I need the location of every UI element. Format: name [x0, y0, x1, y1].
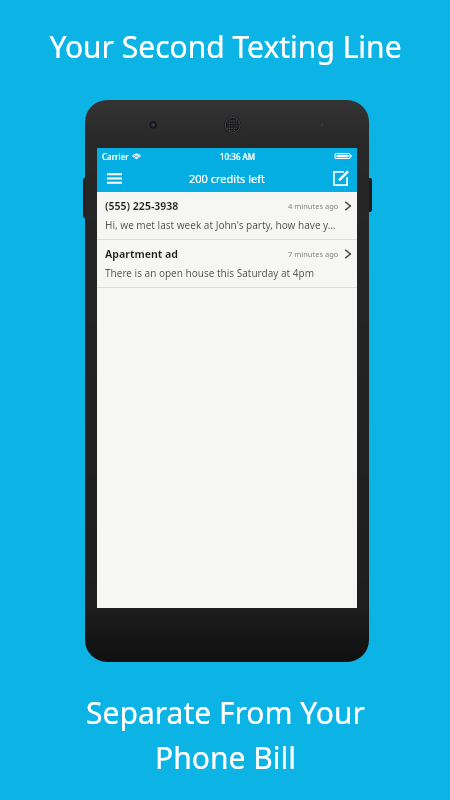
staticText: There is an open house this Saturday at … — [105, 266, 315, 280]
staticText: (555) 225-3938 — [105, 199, 179, 213]
staticText: 10:36 AM — [220, 151, 256, 162]
button[interactable]: (555) 225-3938 — [97, 192, 357, 239]
staticText: 4 minutes ago — [288, 201, 339, 211]
staticText: Separate From Your — [86, 692, 365, 733]
staticText: 200 credits left — [189, 171, 266, 186]
staticText: Hi, we met last week at John's party, ho… — [105, 218, 336, 232]
staticText: Your Second Texting Line — [49, 26, 402, 67]
staticText: Phone Bill — [155, 737, 296, 778]
button[interactable]: Menu — [101, 165, 127, 191]
button[interactable]: Compose new message — [327, 165, 353, 191]
button[interactable]: Apartment ad — [97, 240, 357, 287]
staticText: Carrier — [102, 151, 129, 162]
staticText: 7 minutes ago — [288, 249, 339, 259]
staticText: Apartment ad — [105, 247, 178, 261]
